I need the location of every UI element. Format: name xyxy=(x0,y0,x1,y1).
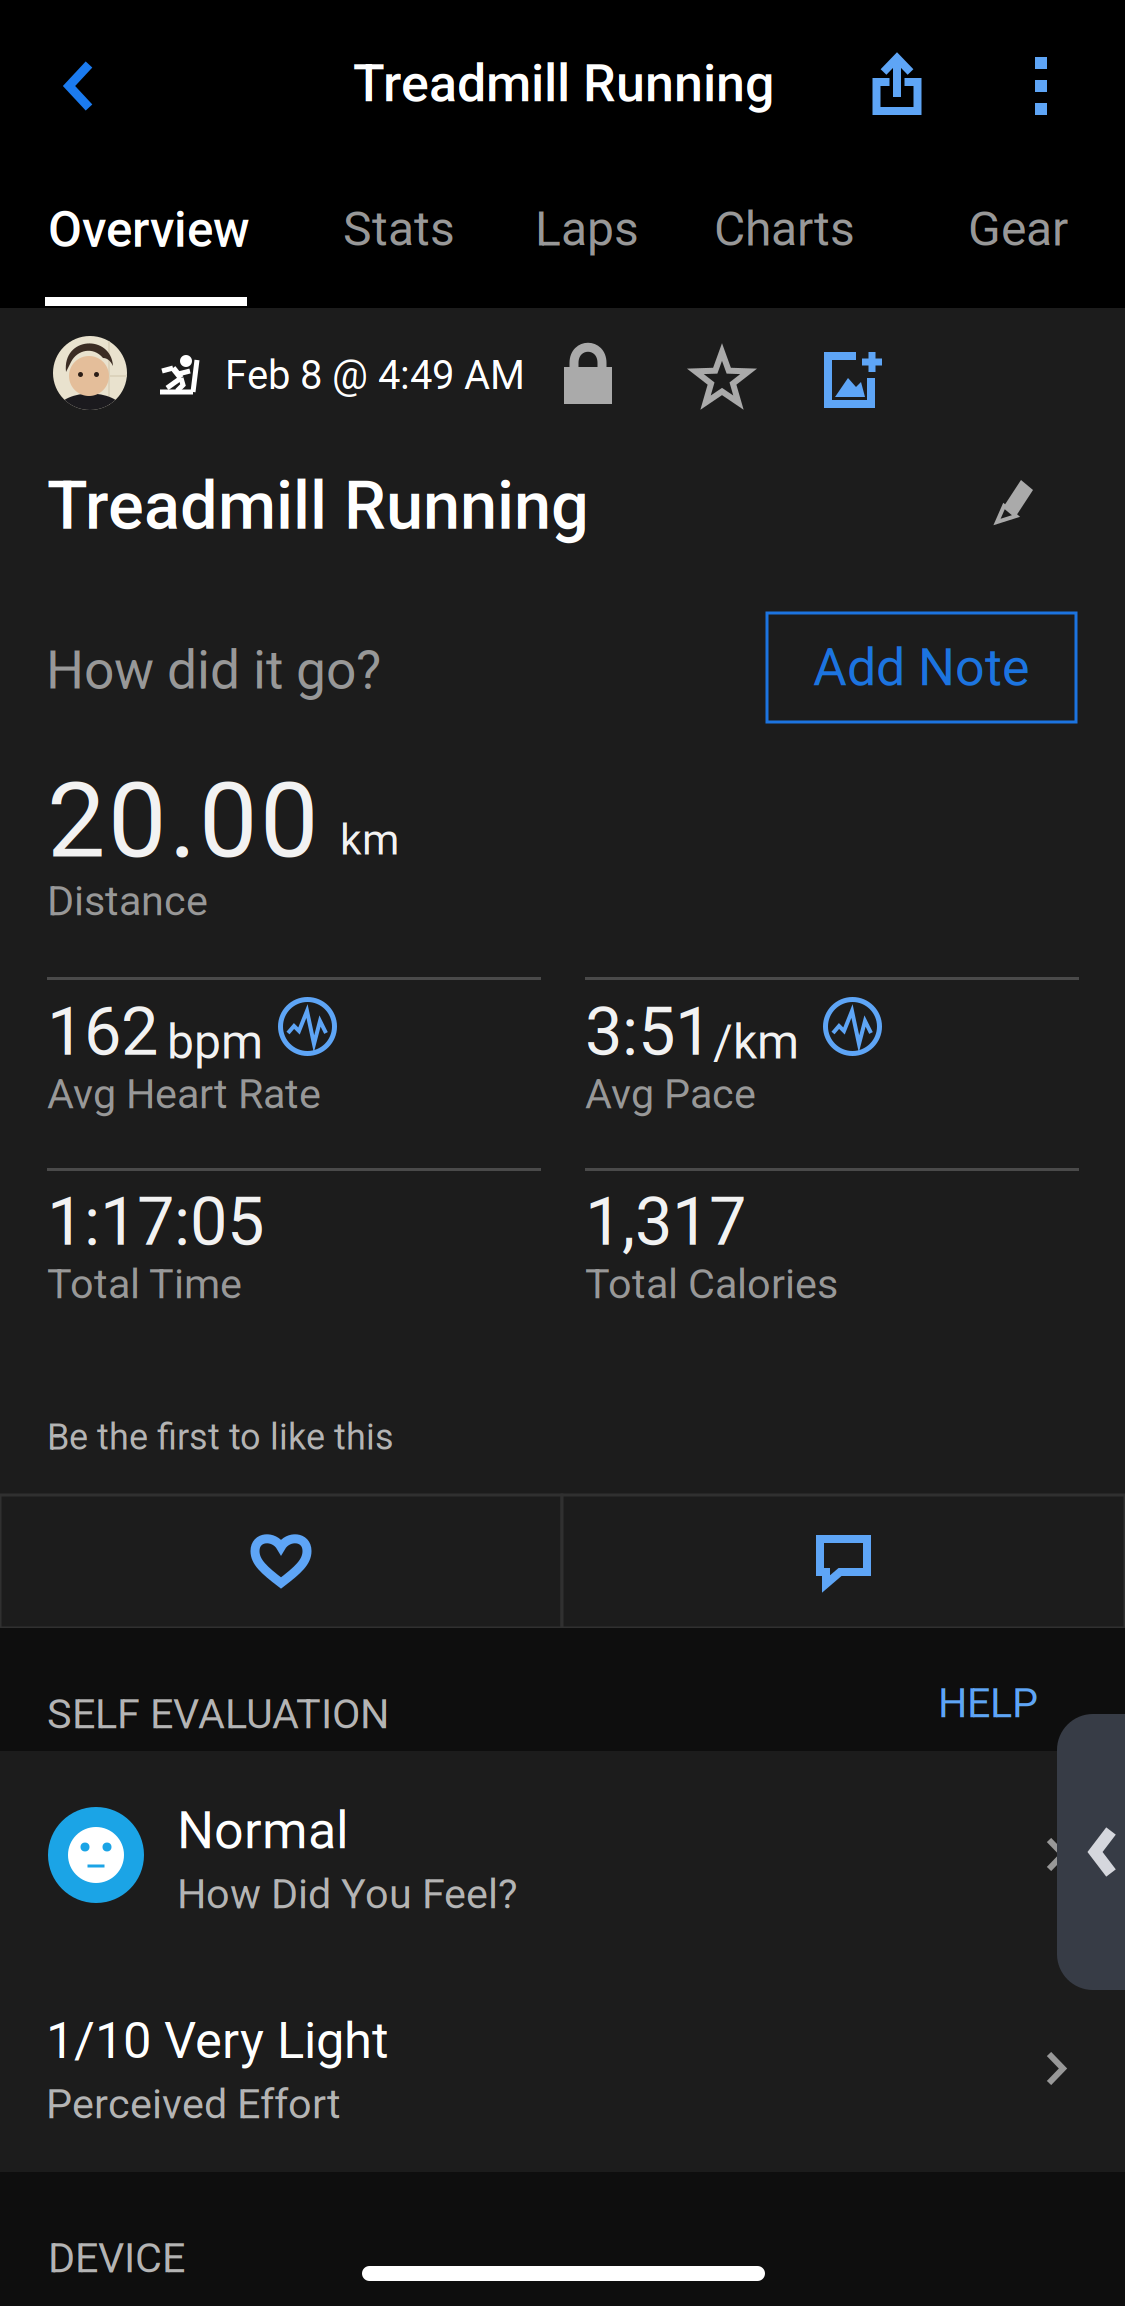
button[interactable]: Add Note xyxy=(767,613,1076,722)
staticText: Be the first to like this xyxy=(47,1416,394,1458)
staticText: HELP xyxy=(938,1679,1038,1727)
staticText: Feb 8 @ 4:49 AM xyxy=(225,352,525,399)
staticText: 1,317 xyxy=(585,1183,746,1261)
staticText: How did it go? xyxy=(46,639,381,701)
staticText: Total Calories xyxy=(585,1260,838,1308)
button[interactable]: Edit activity name xyxy=(969,455,1061,547)
staticText: Add Note xyxy=(813,637,1030,698)
button[interactable]: Back xyxy=(9,16,149,156)
staticText: Distance xyxy=(47,877,208,925)
button[interactable]: More options xyxy=(986,26,1096,146)
button[interactable]: Normal xyxy=(0,1751,1125,1958)
staticText: Avg Heart Rate xyxy=(47,1070,321,1118)
staticText: 20.00 xyxy=(47,760,318,882)
staticText: Normal xyxy=(177,1800,349,1861)
staticText: Treadmill Running xyxy=(47,467,589,545)
staticText: 1:17:05 xyxy=(47,1183,264,1261)
staticText: 3:51 xyxy=(585,993,712,1071)
staticText: Gear xyxy=(968,201,1068,257)
button[interactable]: Favorite xyxy=(678,334,766,422)
staticText: SELF EVALUATION xyxy=(47,1690,389,1738)
button[interactable]: Overview xyxy=(26,170,270,288)
button[interactable]: Share xyxy=(837,24,957,144)
staticText: Treadmill Running xyxy=(353,53,774,114)
button[interactable]: Comment xyxy=(562,1495,1125,1628)
button[interactable]: Charts xyxy=(692,170,876,288)
staticText: 1/10 Very Light xyxy=(46,2011,389,2070)
button[interactable]: Gear xyxy=(946,170,1090,288)
staticText: 162 xyxy=(47,993,158,1071)
staticText: Avg Pace xyxy=(585,1070,756,1118)
staticText: How Did You Feel? xyxy=(177,1870,518,1918)
button[interactable]: 1/10 Very Light xyxy=(0,1958,1125,2172)
button[interactable]: HELP xyxy=(898,1658,1078,1748)
button[interactable]: Add photo xyxy=(810,336,898,424)
button[interactable]: Stats xyxy=(321,170,475,288)
staticText: km xyxy=(340,815,399,865)
staticText: Perceived Effort xyxy=(46,2080,341,2128)
button[interactable]: Laps xyxy=(513,170,652,288)
staticText: Stats xyxy=(343,201,455,257)
staticText: Charts xyxy=(714,201,855,257)
staticText: Overview xyxy=(48,201,250,259)
staticText: Laps xyxy=(535,201,639,257)
staticText: DEVICE xyxy=(48,2234,185,2282)
button[interactable]: Like xyxy=(0,1495,562,1628)
staticText: /km xyxy=(713,1014,799,1070)
staticText: Total Time xyxy=(47,1260,242,1308)
staticText: bpm xyxy=(167,1014,263,1070)
